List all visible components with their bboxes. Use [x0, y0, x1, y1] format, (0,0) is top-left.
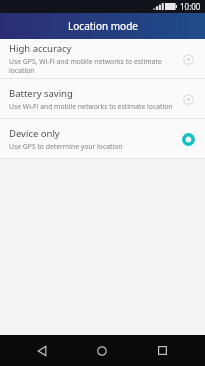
staticText: Device only: [9, 127, 60, 140]
staticText: Use GPS, Wi-Fi and mobile networks to es…: [9, 57, 175, 75]
button[interactable]: Recents: [145, 335, 179, 366]
button[interactable]: Back: [25, 335, 59, 366]
button[interactable]: Home: [85, 335, 119, 366]
staticText: Use Wi-Fi and mobile networks to estimat…: [9, 102, 173, 111]
button[interactable]: Battery saving: [0, 79, 205, 118]
button[interactable]: Device only: [0, 119, 205, 158]
staticText: High accuracy: [9, 42, 72, 55]
staticText: 10:00: [180, 1, 201, 12]
staticText: Use GPS to determine your location: [9, 142, 123, 151]
staticText: Battery saving: [9, 87, 73, 100]
staticText: Location mode: [68, 19, 138, 33]
button[interactable]: High accuracy: [0, 39, 205, 78]
